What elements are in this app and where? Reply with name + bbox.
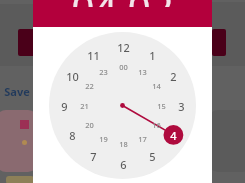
staticText: 10 bbox=[66, 69, 79, 84]
staticText: Save bbox=[4, 84, 30, 99]
button[interactable]: 12 bbox=[49, 32, 196, 179]
staticText: 17 bbox=[138, 134, 147, 144]
staticText: 6 bbox=[120, 157, 127, 172]
button[interactable] bbox=[208, 110, 245, 172]
staticText: 12 bbox=[117, 40, 130, 55]
staticText: 7 bbox=[90, 149, 97, 164]
staticText: 20 bbox=[85, 120, 94, 130]
button[interactable]: Save bbox=[4, 84, 30, 99]
staticText: 00 bbox=[119, 62, 128, 72]
staticText: 21 bbox=[80, 101, 89, 111]
staticText: 18 bbox=[119, 139, 128, 149]
staticText: 22 bbox=[85, 81, 94, 91]
staticText: 9 bbox=[61, 99, 68, 114]
button[interactable] bbox=[0, 4, 46, 66]
staticText: 2 bbox=[170, 69, 177, 84]
staticText: 1 bbox=[149, 48, 156, 63]
button[interactable] bbox=[0, 110, 38, 172]
staticText: 23 bbox=[99, 67, 108, 77]
staticText: 11 bbox=[87, 48, 100, 63]
staticText: 15 bbox=[157, 101, 166, 111]
staticText: 14 bbox=[152, 81, 161, 91]
button[interactable]: 04.02 bbox=[71, 0, 174, 7]
staticText: 5 bbox=[149, 149, 156, 164]
button[interactable] bbox=[205, 2, 245, 66]
staticText: 13 bbox=[138, 67, 147, 77]
staticText: 19 bbox=[99, 134, 108, 144]
staticText: 04.02 bbox=[71, 0, 174, 7]
staticText: 8 bbox=[69, 128, 76, 143]
staticText: 4 bbox=[170, 128, 177, 143]
staticText: 3 bbox=[178, 99, 185, 114]
staticText: 16 bbox=[152, 120, 161, 130]
